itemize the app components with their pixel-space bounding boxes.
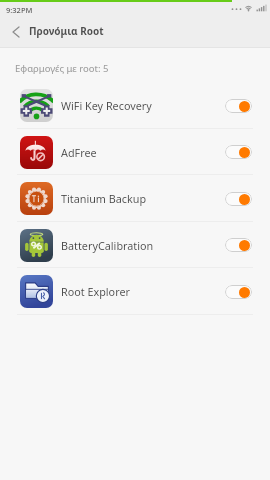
button[interactable]: Toggle [225, 285, 252, 299]
button[interactable]: Toggle [225, 145, 252, 159]
staticText: BatteryCalibration [61, 238, 154, 253]
staticText: WiFi Key Recovery [61, 98, 152, 113]
button[interactable]: AdFree [0, 129, 270, 175]
button[interactable]: Toggle [225, 238, 252, 252]
button[interactable]: Toggle [225, 99, 252, 113]
staticText: Προνόμια Root [29, 24, 104, 38]
button[interactable]: BatteryCalibration [0, 222, 270, 268]
button[interactable]: Root Explorer [0, 268, 270, 315]
staticText: 9:32PM [6, 5, 33, 15]
staticText: AdFree [61, 145, 97, 160]
staticText: Εφαρμογές με root: 5 [15, 62, 109, 75]
button[interactable]: WiFi Key Recovery [0, 82, 270, 129]
button[interactable]: Back [5, 21, 27, 43]
button[interactable]: Titanium Backup [0, 175, 270, 222]
staticText: Root Explorer [61, 284, 130, 299]
staticText: Titanium Backup [61, 191, 147, 206]
button[interactable]: Toggle [225, 192, 252, 206]
